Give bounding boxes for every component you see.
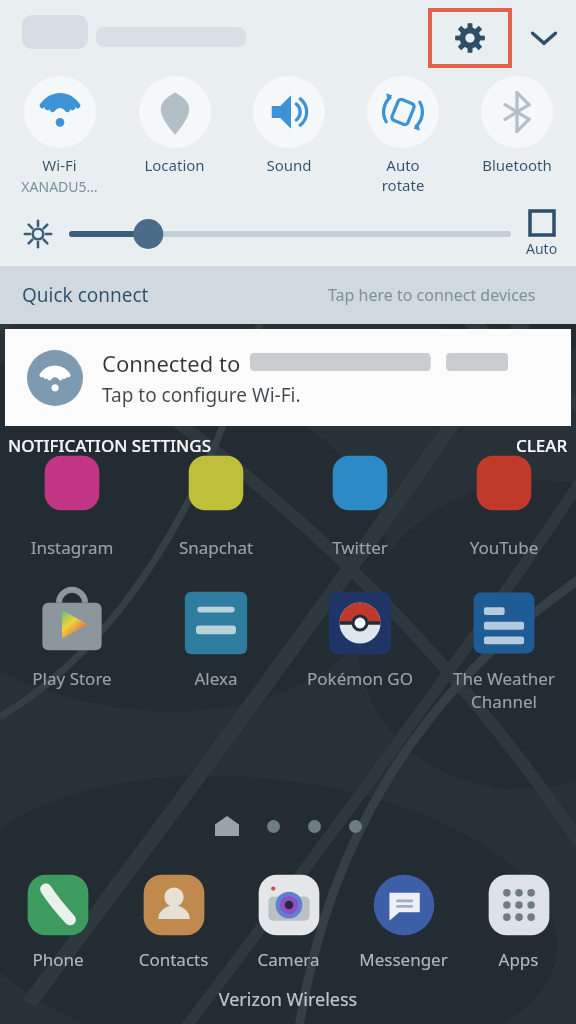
button[interactable]: Contacts xyxy=(116,868,231,971)
staticText: Apps xyxy=(461,948,576,971)
staticText: Camera xyxy=(231,948,346,971)
button[interactable]: Sound xyxy=(232,76,346,175)
staticText: Location xyxy=(117,155,232,175)
button[interactable]: YouTube xyxy=(432,470,576,559)
staticText: Tap to configure Wi-Fi. xyxy=(102,382,301,408)
button[interactable]: NOTIFICATION SETTINGS xyxy=(8,432,212,459)
staticText: Sound xyxy=(232,155,346,175)
button[interactable]: Brightness slider xyxy=(72,214,508,254)
staticText: Play Store xyxy=(0,667,144,690)
staticText: Pokémon GO xyxy=(288,667,432,690)
button[interactable]: Quick connect xyxy=(0,266,576,324)
staticText: Phone xyxy=(0,948,116,971)
button[interactable]: Snapchat xyxy=(144,470,288,559)
button[interactable]: Instagram xyxy=(0,470,144,559)
staticText: Bluetooth xyxy=(460,155,574,175)
staticText: The Weather Channel xyxy=(432,667,576,713)
button[interactable]: Auto xyxy=(526,210,558,258)
button[interactable]: Pokémon GO xyxy=(288,585,432,690)
staticText: Wi-Fi xyxy=(2,155,117,175)
staticText: Snapchat xyxy=(144,536,288,559)
button[interactable]: Bluetooth xyxy=(460,76,574,175)
staticText: CLEAR xyxy=(516,434,568,457)
staticText: Auto rotate xyxy=(346,155,460,195)
button[interactable]: Settings xyxy=(432,12,508,64)
staticText: Instagram xyxy=(0,536,144,559)
button[interactable]: Phone xyxy=(0,868,116,971)
button[interactable]: Auto rotate xyxy=(346,76,460,195)
staticText: Contacts xyxy=(116,948,231,971)
staticText: Tap here to connect devices xyxy=(328,284,536,306)
staticText: Twitter xyxy=(288,536,432,559)
button[interactable]: Alexa xyxy=(144,585,288,690)
button[interactable]: Wi-Fi xyxy=(2,76,117,196)
button[interactable]: Camera xyxy=(231,868,346,971)
staticText: NOTIFICATION SETTINGS xyxy=(8,434,212,457)
staticText: Auto xyxy=(526,239,558,258)
staticText: XANADU5… xyxy=(2,177,117,196)
button[interactable]: CLEAR xyxy=(516,432,568,459)
staticText: Quick connect xyxy=(22,282,149,308)
button[interactable]: Messenger xyxy=(346,868,461,971)
button[interactable]: Play Store xyxy=(0,585,144,690)
button[interactable]: Expand xyxy=(526,20,562,56)
staticText: Connected to xyxy=(102,348,241,378)
staticText: Alexa xyxy=(144,667,288,690)
button[interactable]: Apps xyxy=(461,868,576,971)
staticText: Messenger xyxy=(346,948,461,971)
staticText: YouTube xyxy=(432,536,576,559)
staticText: Verizon Wireless xyxy=(0,987,576,1012)
button[interactable]: Twitter xyxy=(288,470,432,559)
button[interactable]: Location xyxy=(117,76,232,175)
button[interactable]: Connected to xyxy=(5,329,571,426)
button[interactable]: The Weather Channel xyxy=(432,585,576,713)
button[interactable]: Brightness xyxy=(18,214,58,254)
